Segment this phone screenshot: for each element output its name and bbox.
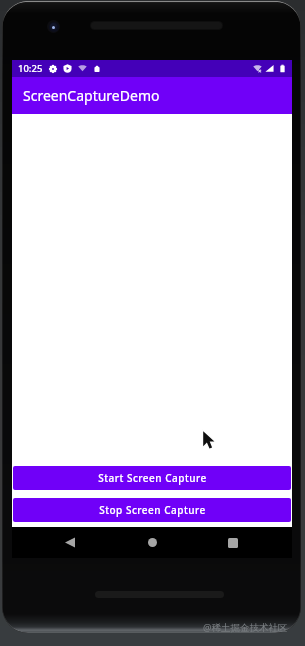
staticText: ScreenCaptureDemo bbox=[23, 86, 160, 105]
staticText: 10:25 bbox=[18, 62, 43, 75]
staticText: @稀土掘金技术社区 bbox=[203, 621, 288, 634]
button[interactable]: Start Screen Capture bbox=[13, 466, 291, 490]
staticText: Start Screen Capture bbox=[98, 471, 207, 485]
button[interactable]: Stop Screen Capture bbox=[13, 498, 291, 522]
button[interactable]: Home bbox=[138, 527, 166, 558]
staticText: Stop Screen Capture bbox=[99, 503, 206, 517]
button[interactable]: Back bbox=[56, 527, 84, 558]
button[interactable]: Recents bbox=[219, 527, 247, 558]
button[interactable]: ScreenCaptureDemo bbox=[12, 77, 292, 114]
